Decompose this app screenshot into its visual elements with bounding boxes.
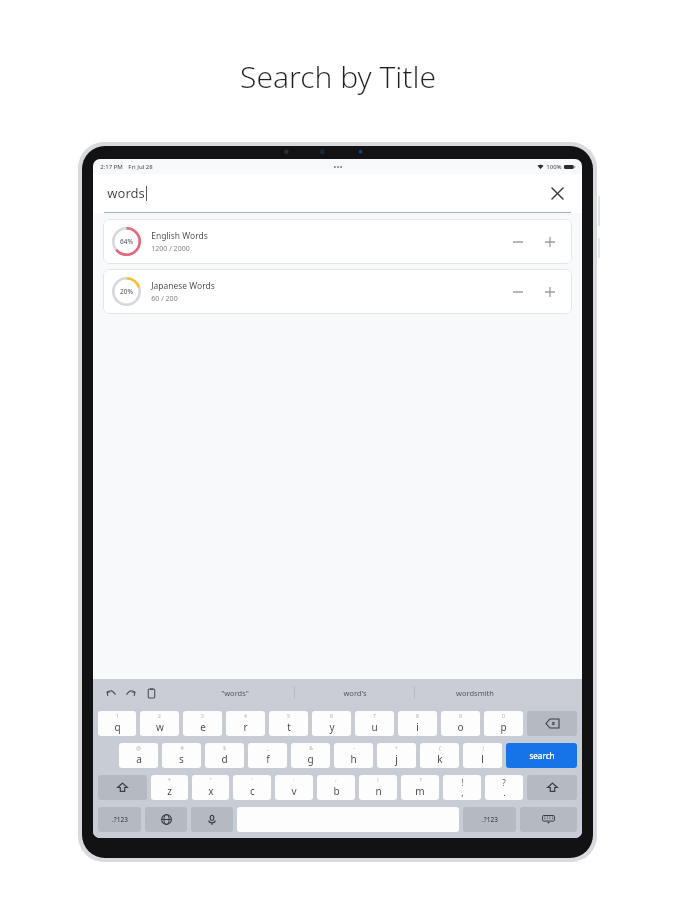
button[interactable]: Shift	[527, 775, 577, 800]
button[interactable]: Increase	[537, 279, 563, 305]
button[interactable]: 6	[312, 711, 351, 736]
staticText: d	[221, 752, 228, 766]
button[interactable]: @	[119, 743, 158, 768]
button[interactable]: 0	[484, 711, 523, 736]
staticText: ,	[461, 786, 464, 798]
staticText: 0	[502, 713, 505, 720]
button[interactable]: Shift	[98, 775, 147, 800]
button[interactable]: Voice input	[191, 807, 233, 832]
button[interactable]: !	[359, 775, 397, 800]
button[interactable]: 5	[269, 711, 308, 736]
staticText: r	[243, 720, 248, 734]
staticText: x	[208, 784, 214, 798]
staticText: 8	[416, 713, 419, 720]
staticText: e	[200, 720, 206, 734]
button[interactable]: 4	[226, 711, 265, 736]
staticText: 9	[459, 713, 462, 720]
staticText: n	[375, 784, 382, 798]
button[interactable]: '	[233, 775, 271, 800]
staticText: s	[179, 752, 184, 766]
button[interactable]: 64%	[103, 219, 572, 264]
staticText: 60 / 200	[151, 294, 178, 304]
button[interactable]: Symbols	[98, 807, 141, 832]
button[interactable]: !	[443, 775, 481, 800]
button[interactable]: "words"	[175, 679, 294, 706]
staticText: 6	[330, 713, 333, 720]
button[interactable]: word's	[295, 679, 414, 706]
button[interactable]: #	[162, 743, 201, 768]
button[interactable]: )	[463, 743, 502, 768]
staticText: word's	[343, 688, 367, 698]
staticText: g	[307, 752, 314, 766]
staticText: 7	[373, 713, 376, 720]
staticText: o	[457, 720, 464, 734]
button[interactable]: 20%	[103, 269, 572, 314]
button[interactable]: 7	[355, 711, 394, 736]
button[interactable]: Increase	[537, 229, 563, 255]
staticText: +	[395, 745, 398, 752]
button[interactable]: 3	[183, 711, 222, 736]
staticText: )	[482, 745, 484, 752]
staticText: Japanese Words	[151, 280, 215, 292]
button[interactable]: Numbers	[463, 807, 516, 832]
staticText: c	[250, 784, 255, 798]
staticText: "words"	[221, 688, 249, 698]
staticText: v	[291, 784, 297, 798]
button[interactable]: _	[248, 743, 287, 768]
staticText: 4	[244, 713, 247, 720]
staticText: 2:17 PM	[100, 163, 123, 171]
staticText: 20%	[120, 287, 133, 296]
button[interactable]: ?	[401, 775, 439, 800]
staticText: .	[503, 786, 506, 798]
staticText: u	[371, 720, 378, 734]
staticText: .?123	[112, 815, 128, 824]
button[interactable]: 9	[441, 711, 480, 736]
button[interactable]: Hide keyboard	[520, 807, 577, 832]
staticText: ;	[335, 777, 337, 784]
button[interactable]: (	[420, 743, 459, 768]
staticText: !	[377, 777, 379, 784]
staticText: 64%	[120, 237, 133, 246]
staticText: 2	[158, 713, 161, 720]
button[interactable]: :	[275, 775, 313, 800]
staticText: 3	[201, 713, 204, 720]
button[interactable]: ;	[317, 775, 355, 800]
staticText: a	[136, 752, 142, 766]
button[interactable]: 8	[398, 711, 437, 736]
staticText: '	[251, 777, 253, 784]
button[interactable]: Language	[145, 807, 187, 832]
button[interactable]: *	[151, 775, 188, 800]
staticText: b	[333, 784, 340, 798]
staticText: w	[156, 720, 164, 734]
button[interactable]: wordsmith	[415, 679, 534, 706]
staticText: _	[266, 745, 269, 752]
staticText: m	[415, 784, 425, 798]
button[interactable]: Decrease	[505, 279, 531, 305]
staticText: l	[481, 752, 484, 766]
staticText: !	[461, 777, 464, 788]
button[interactable]: Redo	[121, 683, 141, 703]
button[interactable]: Clipboard	[141, 683, 161, 703]
button[interactable]: 2	[140, 711, 179, 736]
staticText: "	[209, 777, 212, 784]
button[interactable]: Clear search	[546, 182, 568, 204]
staticText: #	[180, 745, 184, 752]
button[interactable]: "	[192, 775, 229, 800]
staticText: (	[439, 745, 441, 752]
staticText: .?123	[482, 815, 498, 824]
staticText: wordsmith	[456, 688, 494, 698]
button[interactable]: -	[334, 743, 373, 768]
button[interactable]: ?	[485, 775, 523, 800]
staticText: q	[114, 720, 121, 734]
button[interactable]: Undo	[101, 683, 121, 703]
staticText: search	[529, 750, 555, 761]
staticText: Search by Title	[240, 56, 436, 97]
button[interactable]: Decrease	[505, 229, 531, 255]
button[interactable]: +	[377, 743, 416, 768]
button[interactable]: $	[205, 743, 244, 768]
button[interactable]: search	[506, 743, 577, 768]
button[interactable]: 1	[98, 711, 136, 736]
button[interactable]: Backspace	[527, 711, 577, 736]
button[interactable]: &	[291, 743, 330, 768]
